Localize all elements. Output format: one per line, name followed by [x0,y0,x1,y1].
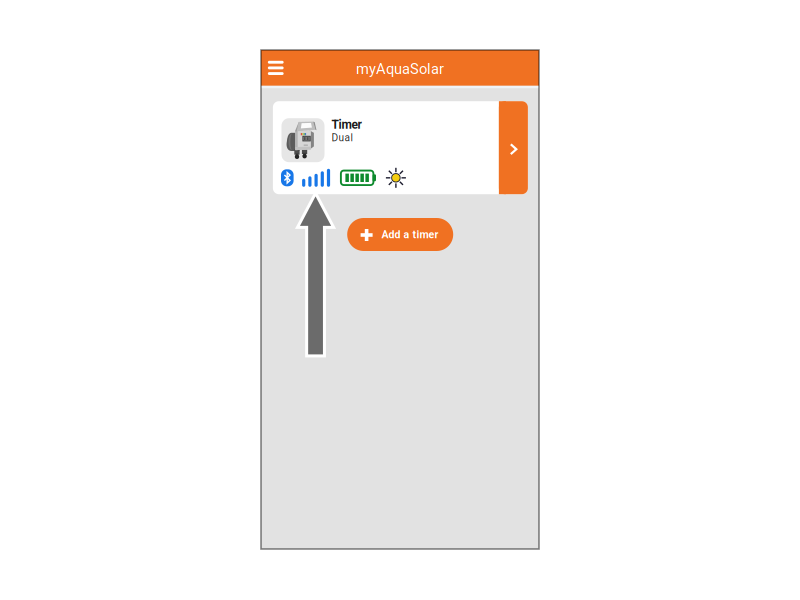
button[interactable]: Timer [273,101,528,194]
button[interactable]: Open Timer details [499,101,528,194]
button[interactable]: Add a timer [347,218,453,251]
staticText: Dual [332,132,353,144]
staticText: Add a timer [382,228,439,241]
staticText: myAquaSolar [356,60,444,78]
button[interactable]: Menu [261,50,290,86]
staticText: Timer [331,118,361,132]
